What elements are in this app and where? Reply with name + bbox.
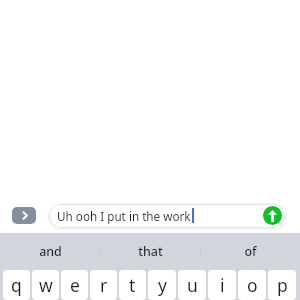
staticText: that <box>138 243 163 260</box>
staticText: w <box>39 273 53 297</box>
button[interactable]: p <box>268 270 296 300</box>
button[interactable]: and <box>0 233 100 270</box>
staticText: e <box>70 273 80 297</box>
staticText: y <box>158 273 167 297</box>
staticText: of <box>244 243 257 260</box>
button[interactable]: Uh ooh I put in the work <box>49 204 285 228</box>
button[interactable]: of <box>200 233 300 270</box>
button[interactable]: y <box>148 270 176 300</box>
staticText: o <box>247 273 258 297</box>
staticText: t <box>129 273 136 297</box>
button[interactable]: t <box>119 270 146 300</box>
staticText: p <box>277 273 288 297</box>
staticText: Uh ooh I put in the work <box>57 208 191 224</box>
staticText: u <box>187 273 198 297</box>
button[interactable]: w <box>32 270 59 300</box>
button[interactable]: u <box>178 270 206 300</box>
staticText: i <box>220 273 225 297</box>
staticText: q <box>11 273 22 297</box>
staticText: and <box>39 243 62 260</box>
button[interactable]: e <box>61 270 88 300</box>
button[interactable]: o <box>238 270 266 300</box>
button[interactable]: q <box>3 270 30 300</box>
button[interactable]: Send <box>263 206 282 225</box>
button[interactable]: that <box>100 233 200 270</box>
staticText: r <box>100 273 108 297</box>
button[interactable]: r <box>90 270 117 300</box>
button[interactable]: Show apps <box>12 207 36 224</box>
button[interactable]: i <box>208 270 236 300</box>
